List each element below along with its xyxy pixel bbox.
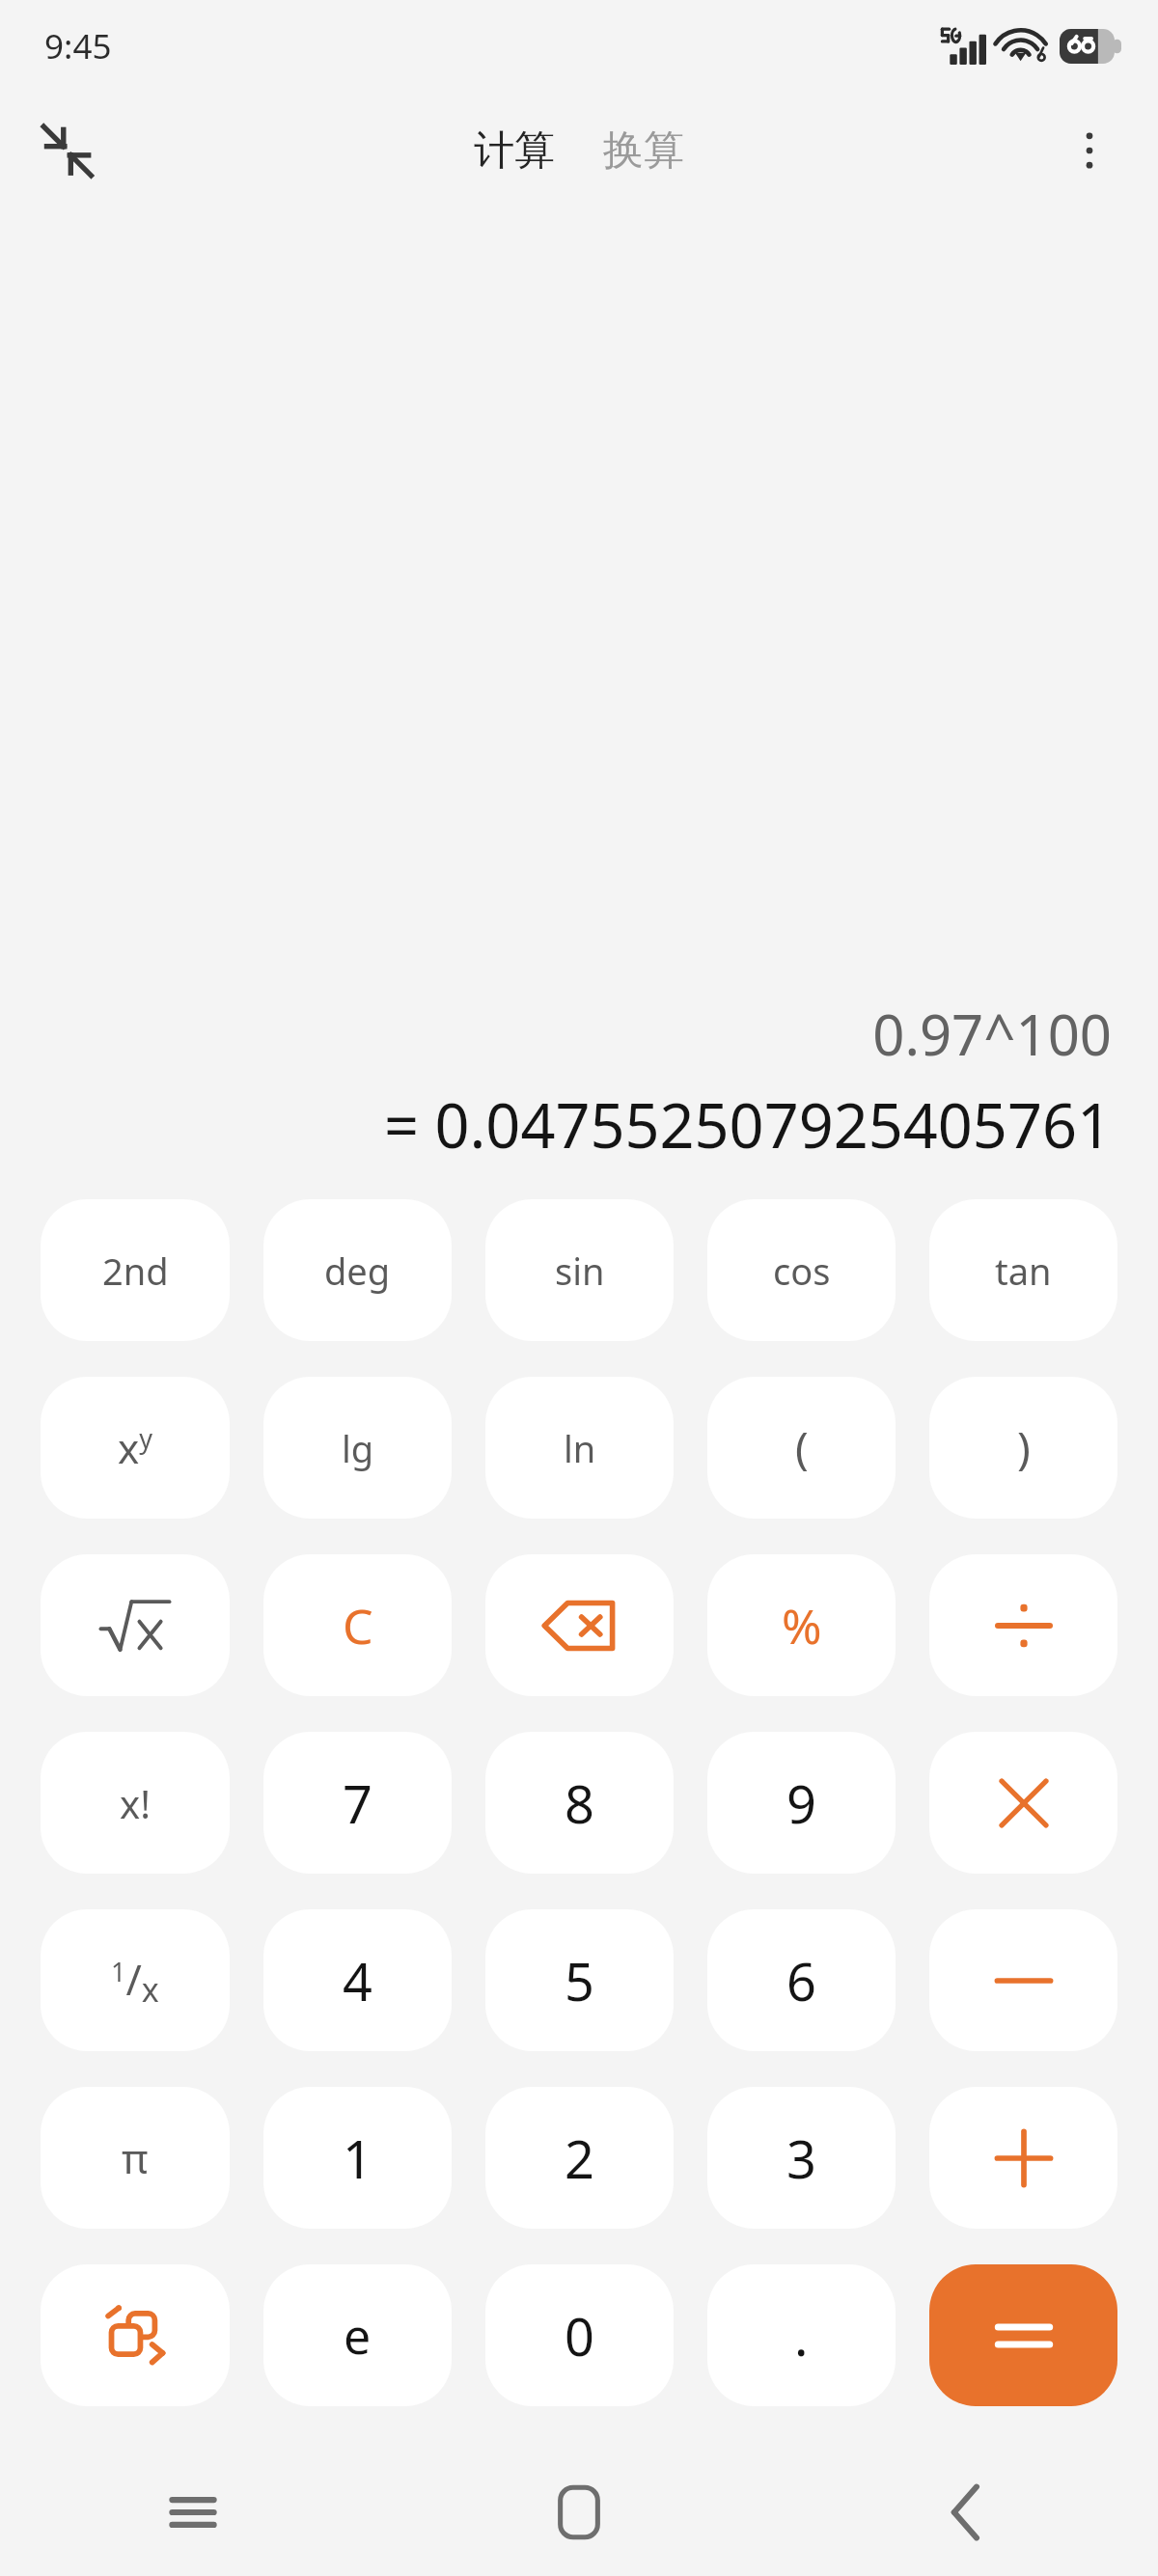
staticText: 0.97^100 [872, 996, 1112, 1072]
staticText: x! [120, 1777, 151, 1829]
button[interactable]: 3 [707, 2087, 896, 2229]
staticText: 6 [786, 1945, 816, 2016]
button[interactable]: Collapse [21, 105, 112, 196]
staticText: 3 [786, 2123, 816, 2194]
button[interactable]: C [263, 1554, 452, 1696]
staticText: 9 [786, 1768, 816, 1839]
staticText: ln [564, 1423, 596, 1473]
staticText: ( [795, 1417, 809, 1478]
button[interactable]: ) [929, 1377, 1117, 1519]
staticText: cos [773, 1246, 831, 1296]
button[interactable]: cos [707, 1199, 896, 1341]
button[interactable]: Minus [929, 1909, 1117, 2051]
staticText: xy [118, 1420, 152, 1475]
button[interactable]: e [263, 2264, 452, 2406]
staticText: 8 [565, 1768, 594, 1839]
staticText: 2 [565, 2123, 594, 2194]
button[interactable]: 9 [707, 1732, 896, 1874]
staticText: tan [995, 1246, 1052, 1296]
staticText: 7 [343, 1768, 372, 1839]
button[interactable]: xy [41, 1377, 230, 1519]
button[interactable]: 2nd [41, 1199, 230, 1341]
button[interactable]: 计算 [462, 116, 566, 186]
staticText: C [343, 1593, 373, 1658]
staticText: % [782, 1593, 822, 1658]
button[interactable]: π [41, 2087, 230, 2229]
button[interactable]: Divide [929, 1554, 1117, 1696]
staticText: . [794, 2300, 809, 2371]
staticText: 2nd [102, 1246, 169, 1296]
button[interactable]: Recents [0, 2449, 386, 2576]
button[interactable]: 8 [485, 1732, 674, 1874]
staticText: π [122, 2130, 149, 2185]
button[interactable]: sin [485, 1199, 674, 1341]
button[interactable]: Backspace [485, 1554, 674, 1696]
staticText: 0 [565, 2300, 594, 2371]
button[interactable]: deg [263, 1199, 452, 1341]
button[interactable]: tan [929, 1199, 1117, 1341]
button[interactable]: More options [1044, 105, 1135, 196]
staticText: = 0.047552507925405761 [384, 1083, 1112, 1166]
staticText: 换算 [603, 125, 684, 177]
button[interactable]: ( [707, 1377, 896, 1519]
button[interactable]: Home [386, 2449, 772, 2576]
button[interactable]: Back [772, 2449, 1158, 2576]
button[interactable]: 0 [485, 2264, 674, 2406]
button[interactable]: Plus [929, 2087, 1117, 2229]
button[interactable]: Copy [41, 2264, 230, 2406]
button[interactable]: ln [485, 1377, 674, 1519]
button[interactable]: Multiply [929, 1732, 1117, 1874]
staticText: 1/x [111, 1950, 159, 2012]
button[interactable]: 5 [485, 1909, 674, 2051]
button[interactable]: . [707, 2264, 896, 2406]
button[interactable]: % [707, 1554, 896, 1696]
staticText: 计算 [474, 125, 555, 177]
button[interactable]: Equals [929, 2264, 1117, 2406]
button[interactable]: lg [263, 1377, 452, 1519]
button[interactable]: 1/x [41, 1909, 230, 2051]
button[interactable]: 7 [263, 1732, 452, 1874]
staticText: 5 [565, 1945, 594, 2016]
button[interactable]: 2 [485, 2087, 674, 2229]
staticText: ) [1017, 1417, 1031, 1478]
staticText: sin [555, 1246, 605, 1296]
staticText: e [344, 2303, 372, 2369]
staticText: 1 [343, 2123, 372, 2194]
button[interactable]: 6 [707, 1909, 896, 2051]
button[interactable]: x! [41, 1732, 230, 1874]
button[interactable]: 1 [263, 2087, 452, 2229]
button[interactable]: 换算 [592, 116, 696, 186]
button[interactable] [41, 1554, 230, 1696]
staticText: 9:45 [44, 23, 112, 69]
staticText: lg [342, 1423, 374, 1473]
staticText: 4 [343, 1945, 372, 2016]
staticText: deg [324, 1246, 391, 1296]
button[interactable]: 4 [263, 1909, 452, 2051]
